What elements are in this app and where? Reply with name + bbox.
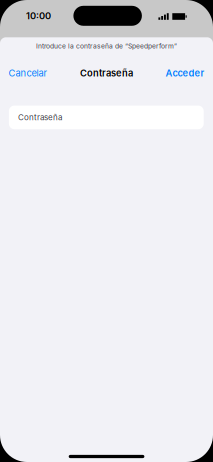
staticText: Cancelar xyxy=(8,67,47,79)
staticText: Contraseña xyxy=(18,113,62,122)
staticText: Introduce la contraseña de “Speedperform… xyxy=(36,42,177,50)
staticText: Contraseña xyxy=(80,67,133,79)
button[interactable]: Acceder xyxy=(165,65,204,81)
button[interactable]: Cancelar xyxy=(8,65,47,81)
button[interactable]: Contraseña xyxy=(9,106,204,129)
staticText: Acceder xyxy=(165,67,204,79)
staticText: 10:00 xyxy=(26,10,51,21)
